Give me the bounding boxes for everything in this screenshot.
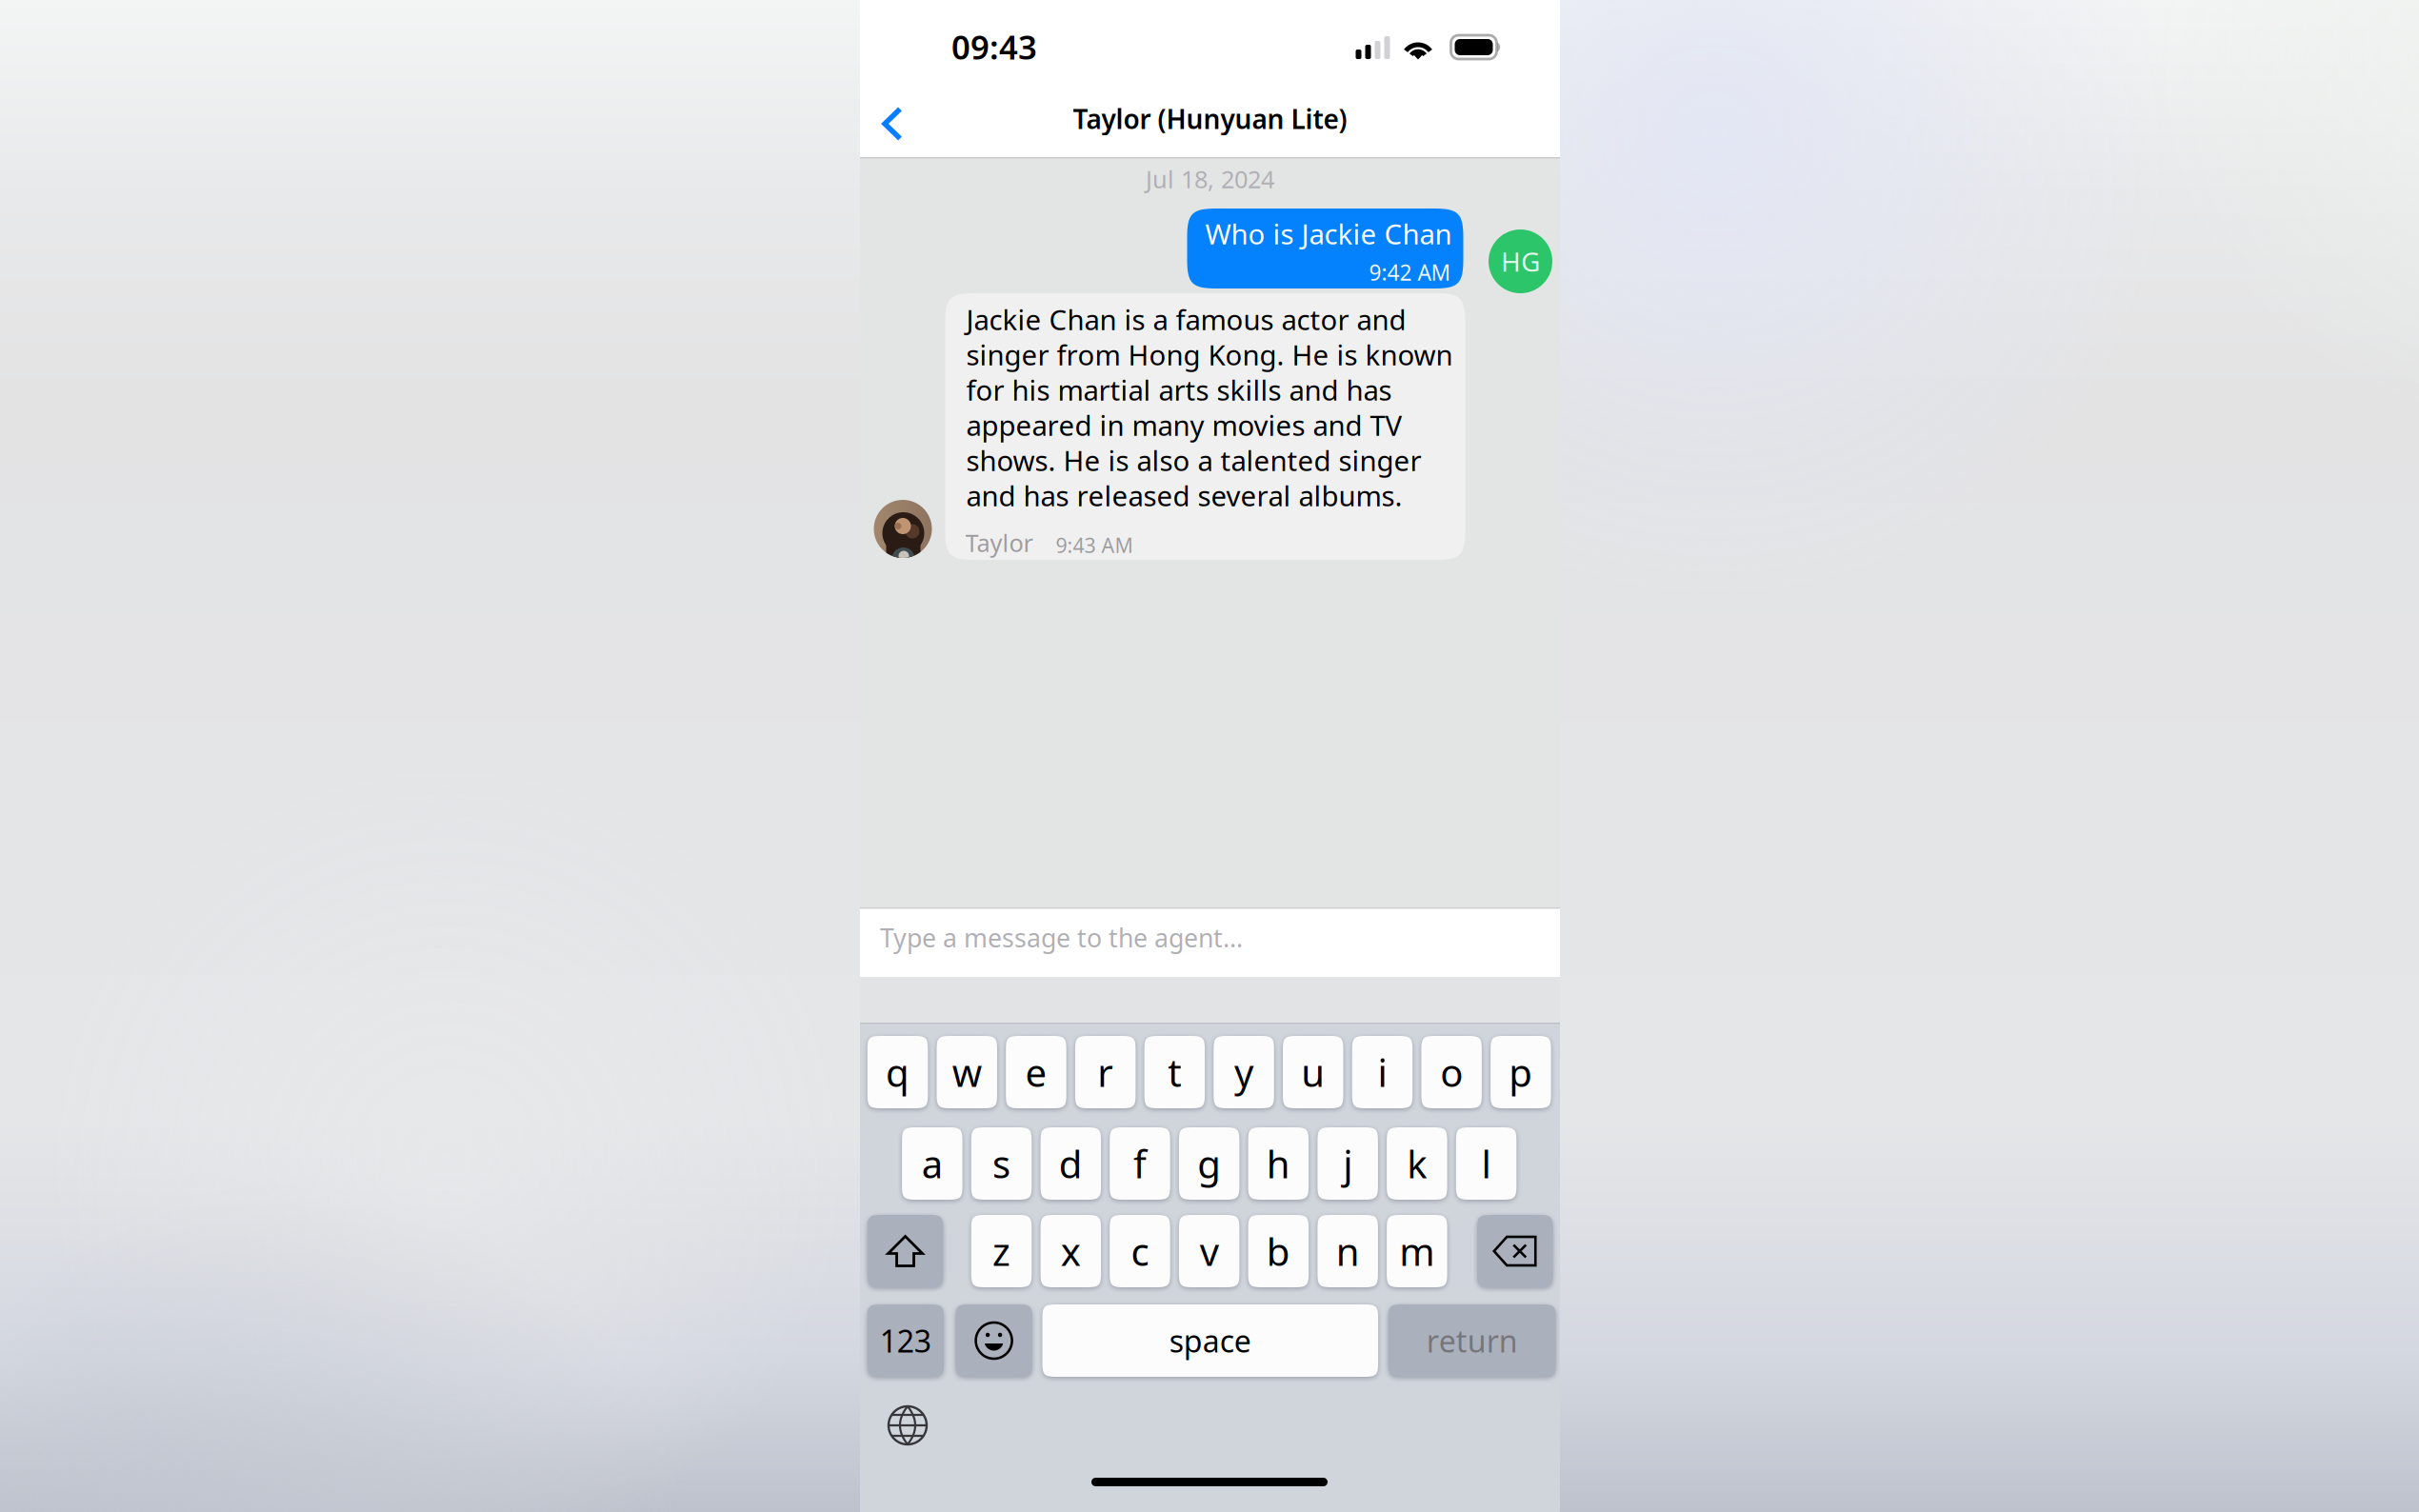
button[interactable]: s [971,1127,1032,1200]
staticText: Who is Jackie Chan [1205,215,1452,252]
staticText: h [1266,1138,1290,1189]
staticText: u [1301,1047,1325,1097]
staticText: j [1343,1138,1353,1189]
button[interactable]: Delete [1477,1215,1553,1287]
button[interactable]: Type a message to the agent... [880,921,1243,954]
staticText: f [1133,1138,1147,1189]
staticText: a [922,1138,943,1189]
staticText: n [1336,1226,1360,1276]
button[interactable]: k [1387,1127,1447,1200]
staticText: Jul 18, 2024 [1146,163,1274,195]
button[interactable]: Emoji [956,1304,1032,1377]
staticText: 9:42 AM [1369,258,1451,287]
button[interactable]: o [1421,1036,1482,1108]
staticText: t [1168,1047,1181,1097]
button[interactable]: l [1456,1127,1516,1200]
staticText: v [1200,1226,1219,1276]
button[interactable]: w [937,1036,997,1108]
button[interactable]: y [1214,1036,1274,1108]
staticText: o [1440,1047,1463,1097]
button[interactable]: f [1110,1127,1170,1200]
button[interactable]: space [1042,1304,1378,1377]
staticText: 9:43 AM [1033,532,1133,559]
button[interactable]: b [1248,1215,1309,1287]
button[interactable]: a [902,1127,962,1200]
button[interactable]: return [1388,1304,1556,1377]
button[interactable]: c [1110,1215,1170,1287]
staticText: 123 [880,1320,931,1361]
staticText: r [1097,1047,1114,1097]
button[interactable]: Switch keyboard [877,1395,938,1456]
button[interactable]: p [1491,1036,1551,1108]
button[interactable]: i [1352,1036,1413,1108]
button[interactable]: n [1317,1215,1378,1287]
staticText: Taylor (Hunyuan Lite) [1073,101,1347,136]
button[interactable]: q [867,1036,928,1108]
button[interactable]: u [1283,1036,1343,1108]
staticText: x [1061,1226,1081,1276]
button[interactable]: Back [870,90,940,158]
staticText: b [1266,1226,1290,1276]
staticText: return [1426,1320,1518,1361]
staticText: l [1481,1138,1491,1189]
staticText: g [1197,1138,1221,1189]
staticText: 09:43 [951,25,1037,69]
staticText: i [1378,1047,1387,1097]
staticText: p [1509,1047,1533,1097]
button[interactable]: j [1317,1127,1378,1200]
staticText: e [1025,1047,1047,1097]
button[interactable]: Shift [867,1215,943,1287]
staticText: k [1407,1138,1427,1189]
staticText: s [992,1138,1010,1189]
staticText: Taylor [965,527,1033,559]
button[interactable]: r [1075,1036,1136,1108]
button[interactable]: x [1041,1215,1101,1287]
button[interactable]: g [1179,1127,1239,1200]
button[interactable]: 123 [867,1304,944,1377]
staticText: d [1059,1138,1083,1189]
staticText: c [1131,1226,1149,1276]
staticText: q [886,1047,910,1097]
button[interactable]: h [1248,1127,1309,1200]
staticText: Type a message to the agent... [880,921,1243,954]
button[interactable]: e [1006,1036,1066,1108]
button[interactable]: v [1179,1215,1239,1287]
button[interactable]: m [1387,1215,1447,1287]
button[interactable]: d [1041,1127,1101,1200]
staticText: y [1234,1047,1253,1097]
staticText: w [952,1047,982,1097]
staticText: Jackie Chan is a famous actor and singer… [966,301,1453,514]
button[interactable]: t [1144,1036,1205,1108]
staticText: HG [1501,244,1540,279]
staticText: m [1399,1226,1435,1276]
staticText: z [992,1226,1010,1276]
button[interactable]: z [971,1215,1032,1287]
staticText: space [1169,1320,1251,1361]
